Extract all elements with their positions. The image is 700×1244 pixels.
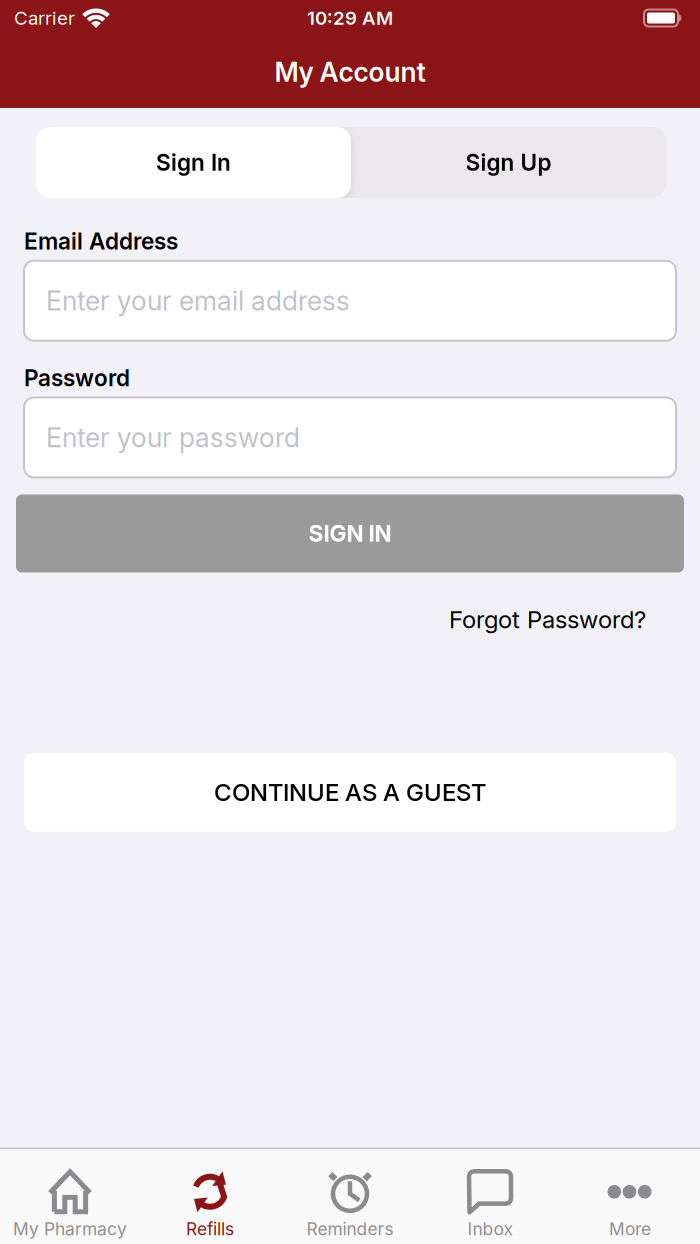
button[interactable]: Inbox [420, 1171, 560, 1239]
staticText: My Pharmacy [13, 1219, 127, 1239]
button[interactable]: Sign Up [351, 127, 666, 198]
staticText: Enter your email address [46, 285, 350, 316]
staticText: Refills [186, 1219, 234, 1239]
staticText: CONTINUE AS A GUEST [214, 778, 486, 806]
button[interactable]: More [560, 1171, 700, 1239]
staticText: Sign Up [465, 149, 551, 176]
button[interactable]: SIGN IN [16, 494, 684, 572]
button[interactable]: Email Address field [24, 261, 676, 341]
staticText: Carrier [14, 7, 75, 29]
staticText: My Account [274, 56, 425, 88]
staticText: Sign In [156, 149, 231, 176]
button[interactable]: My Pharmacy [0, 1171, 140, 1239]
button[interactable]: Sign In [36, 127, 351, 198]
button[interactable]: Forgot Password? [449, 605, 646, 634]
staticText: Email Address [24, 228, 178, 255]
staticText: Enter your password [46, 422, 300, 453]
staticText: Password [24, 365, 130, 391]
staticText: Inbox [467, 1219, 512, 1239]
staticText: 10:29 AM [307, 7, 393, 29]
staticText: Forgot Password? [449, 605, 646, 634]
staticText: More [609, 1219, 651, 1239]
staticText: Reminders [306, 1219, 393, 1239]
staticText: SIGN IN [308, 520, 391, 547]
button[interactable]: Password field [24, 397, 676, 477]
button[interactable]: Refills [140, 1171, 280, 1239]
button[interactable]: Reminders [280, 1171, 420, 1239]
button[interactable]: CONTINUE AS A GUEST [24, 753, 676, 832]
